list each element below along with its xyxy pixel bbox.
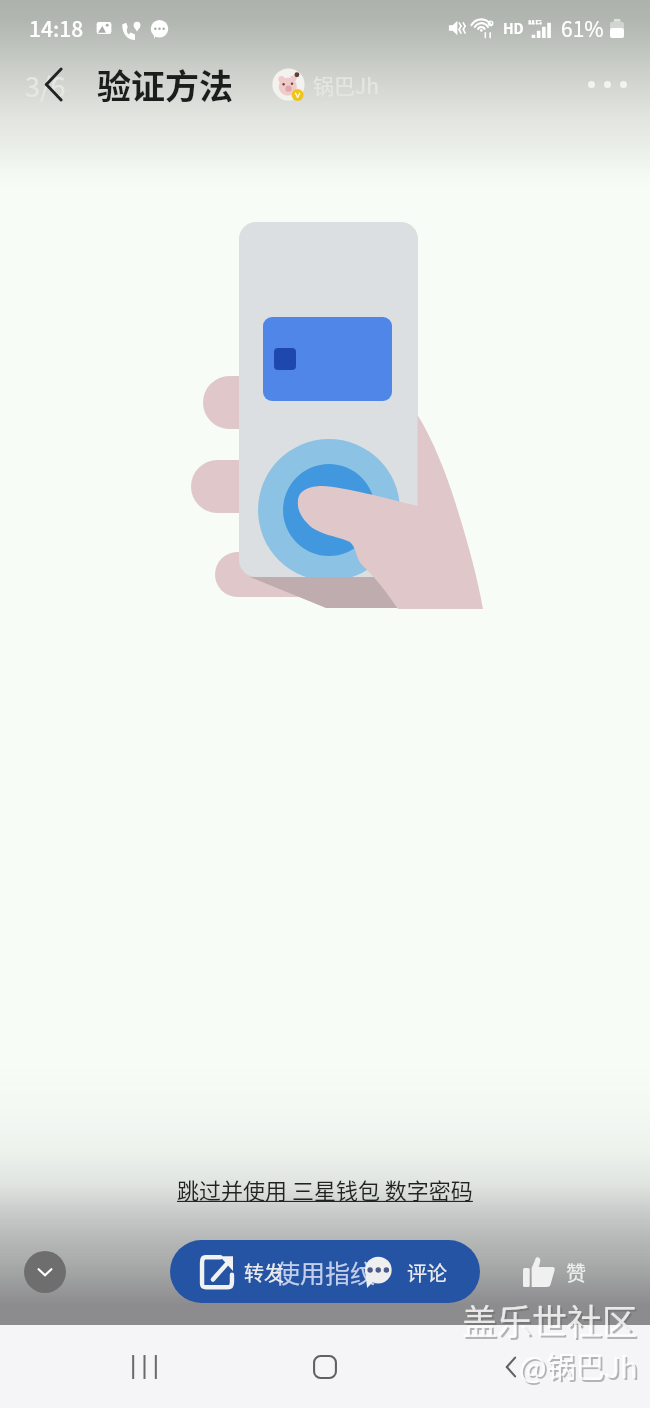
button[interactable]: Back (484, 1339, 540, 1395)
button[interactable]: 赞 (523, 1257, 586, 1287)
button[interactable]: Recent apps (116, 1339, 172, 1395)
staticText: 盖乐世社区 (464, 1296, 640, 1347)
button[interactable]: 使用指纹 (170, 1240, 480, 1303)
button[interactable]: More options (580, 73, 635, 96)
staticText: 转发 (244, 1258, 284, 1287)
button[interactable]: 评论 (359, 1256, 447, 1288)
button[interactable]: 跳过并使用 三星钱包 数字密码 (177, 1173, 473, 1205)
staticText: 评论 (407, 1258, 447, 1287)
staticText: 使用指纹 (275, 1254, 376, 1290)
staticText: 验证方法 (97, 60, 233, 109)
staticText: 3/6 (25, 66, 66, 105)
staticText: @锅巴Jh (519, 1344, 638, 1386)
button[interactable]: Collapse (24, 1251, 66, 1293)
staticText: 14:18 (29, 13, 84, 43)
staticText: @锅巴Jh (521, 1346, 640, 1388)
button[interactable]: Back (29, 60, 77, 108)
staticText: 盖乐世社区 (462, 1294, 638, 1345)
button[interactable]: 转发 (200, 1255, 284, 1289)
staticText: 赞 (566, 1258, 586, 1287)
staticText: HD (503, 18, 524, 38)
button[interactable]: Home (297, 1339, 353, 1395)
staticText: 61% (561, 13, 604, 43)
staticText: 锅巴Jh (313, 70, 379, 100)
